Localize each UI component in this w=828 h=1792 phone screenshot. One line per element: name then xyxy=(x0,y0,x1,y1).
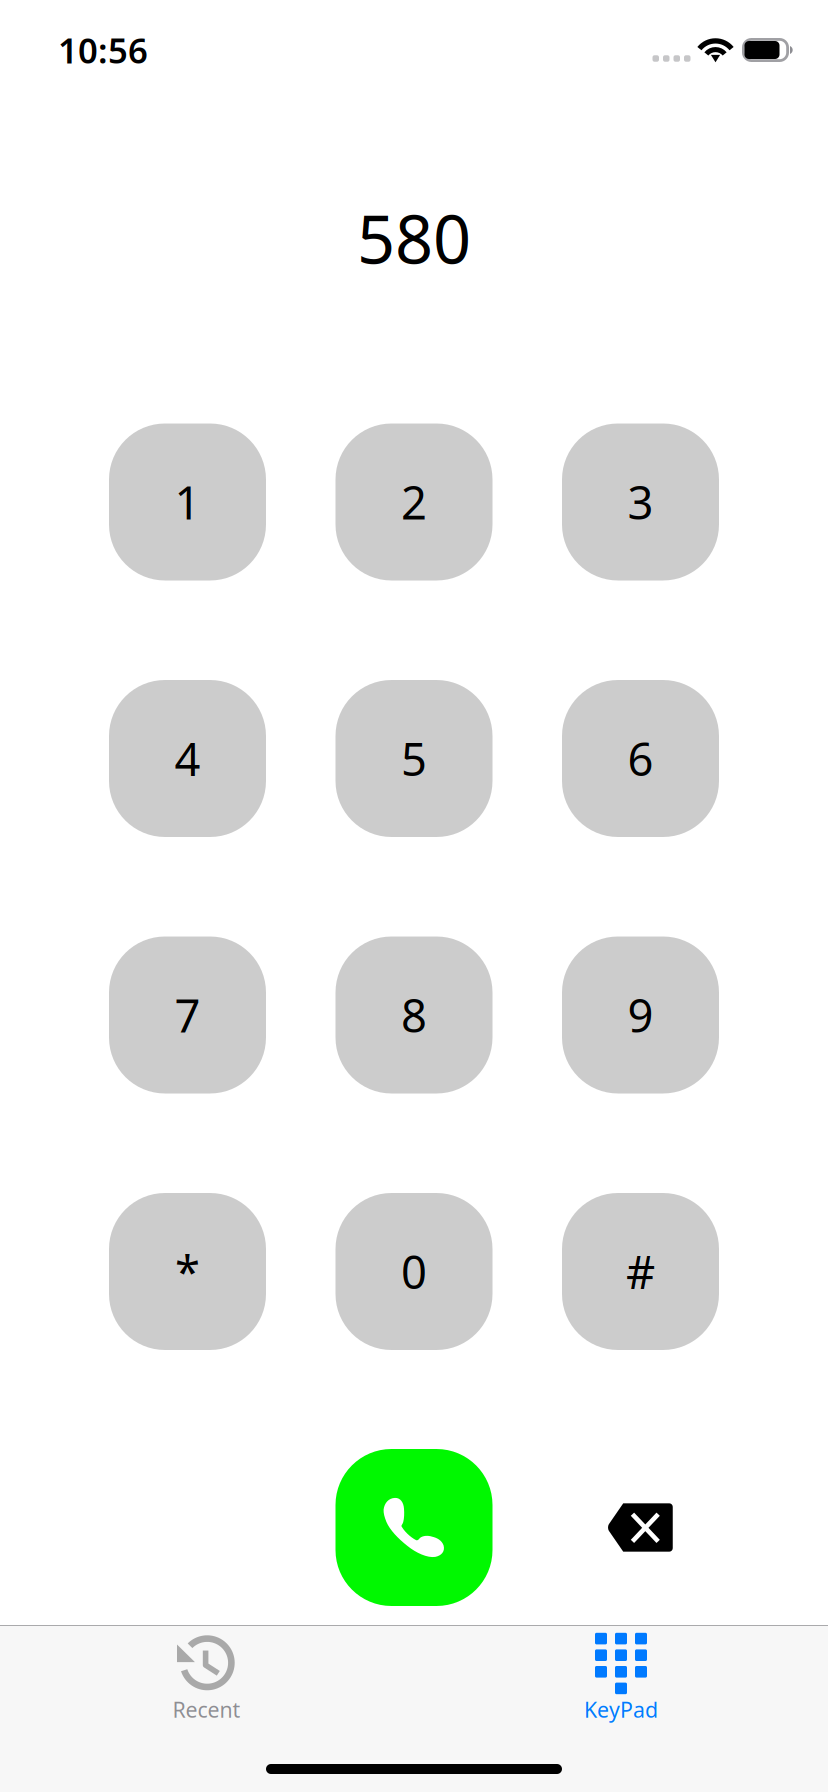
staticText: 1 xyxy=(174,472,200,532)
button[interactable]: Call xyxy=(335,1449,492,1606)
staticText: 5 xyxy=(401,728,427,789)
button[interactable]: 2 xyxy=(335,423,492,580)
staticText: * xyxy=(175,1241,200,1302)
button[interactable]: Delete xyxy=(562,1449,719,1606)
button[interactable]: 4 xyxy=(109,680,266,837)
staticText: 6 xyxy=(627,728,653,789)
staticText: # xyxy=(626,1241,655,1302)
staticText: 7 xyxy=(174,985,200,1045)
staticText: Recent xyxy=(172,1695,240,1724)
button[interactable]: 6 xyxy=(562,680,719,837)
button[interactable]: # xyxy=(562,1193,719,1350)
staticText: 2 xyxy=(401,472,427,532)
button[interactable]: Recent xyxy=(0,1625,414,1792)
button[interactable]: 8 xyxy=(335,936,492,1093)
staticText: 580 xyxy=(357,194,471,282)
button[interactable]: KeyPad xyxy=(414,1625,828,1792)
staticText: 0 xyxy=(401,1241,427,1302)
staticText: 8 xyxy=(401,985,427,1045)
staticText: 10:56 xyxy=(58,27,148,73)
staticText: 3 xyxy=(627,472,653,532)
button[interactable]: 9 xyxy=(562,936,719,1093)
staticText: 4 xyxy=(174,728,200,789)
button[interactable]: 7 xyxy=(109,936,266,1093)
button[interactable]: * xyxy=(109,1193,266,1350)
button[interactable]: 1 xyxy=(109,423,266,580)
staticText: 9 xyxy=(627,985,653,1045)
button[interactable]: 3 xyxy=(562,423,719,580)
button[interactable]: 5 xyxy=(335,680,492,837)
button[interactable]: 0 xyxy=(335,1193,492,1350)
staticText: KeyPad xyxy=(584,1695,658,1724)
